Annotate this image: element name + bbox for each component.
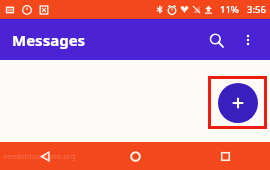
button[interactable]: Back bbox=[0, 142, 90, 170]
staticText: Messages bbox=[12, 30, 86, 50]
button[interactable]: More options bbox=[232, 24, 264, 56]
button[interactable]: New conversation bbox=[218, 83, 258, 123]
button[interactable]: Search bbox=[200, 24, 232, 56]
staticText: 3:56 bbox=[247, 3, 266, 16]
staticText: 11% bbox=[220, 3, 239, 16]
button[interactable]: Home bbox=[90, 142, 180, 170]
staticText: reminhtodaspro.org bbox=[4, 151, 76, 161]
button[interactable]: Recent apps bbox=[180, 142, 270, 170]
